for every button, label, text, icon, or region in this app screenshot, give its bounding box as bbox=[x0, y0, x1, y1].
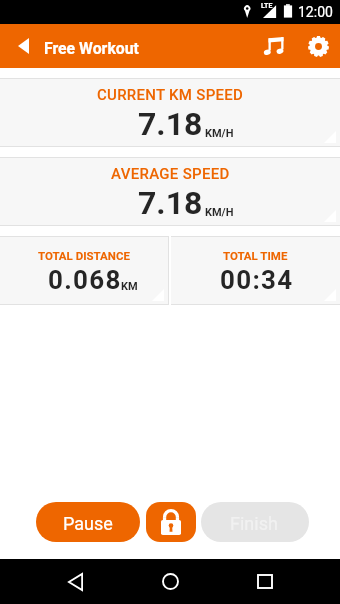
button[interactable]: Home bbox=[146, 559, 194, 604]
staticText: TOTAL DISTANCE bbox=[38, 249, 130, 262]
button[interactable]: Music bbox=[252, 24, 296, 68]
staticText: 7.18 bbox=[138, 105, 203, 143]
staticText: Free Workout bbox=[44, 39, 139, 58]
staticText: KM bbox=[121, 280, 138, 293]
button[interactable]: Lock bbox=[146, 502, 196, 542]
staticText: 12:00 bbox=[298, 4, 333, 20]
staticText: 7.18 bbox=[138, 184, 203, 222]
staticText: Finish bbox=[230, 513, 278, 534]
staticText: Pause bbox=[63, 513, 113, 534]
button[interactable]: TOTAL TIME bbox=[171, 236, 340, 305]
staticText: TOTAL TIME bbox=[223, 249, 288, 262]
staticText: KM/H bbox=[205, 206, 234, 219]
staticText: KM/H bbox=[205, 127, 234, 140]
button[interactable]: Recents bbox=[241, 559, 289, 604]
button[interactable]: AVERAGE SPEED bbox=[0, 157, 340, 226]
button[interactable]: Pause bbox=[36, 502, 140, 542]
staticText: LTE bbox=[261, 2, 273, 10]
staticText: 0.068 bbox=[48, 265, 122, 295]
button[interactable]: Finish bbox=[201, 502, 309, 542]
button[interactable]: Settings bbox=[296, 24, 340, 68]
button[interactable]: CURRENT KM SPEED bbox=[0, 78, 340, 147]
staticText: 00:34 bbox=[220, 265, 294, 295]
button[interactable]: Back bbox=[4, 24, 42, 68]
button[interactable]: TOTAL DISTANCE bbox=[0, 236, 168, 305]
staticText: CURRENT KM SPEED bbox=[97, 86, 244, 104]
button[interactable]: Back bbox=[51, 559, 99, 604]
staticText: AVERAGE SPEED bbox=[111, 165, 230, 183]
